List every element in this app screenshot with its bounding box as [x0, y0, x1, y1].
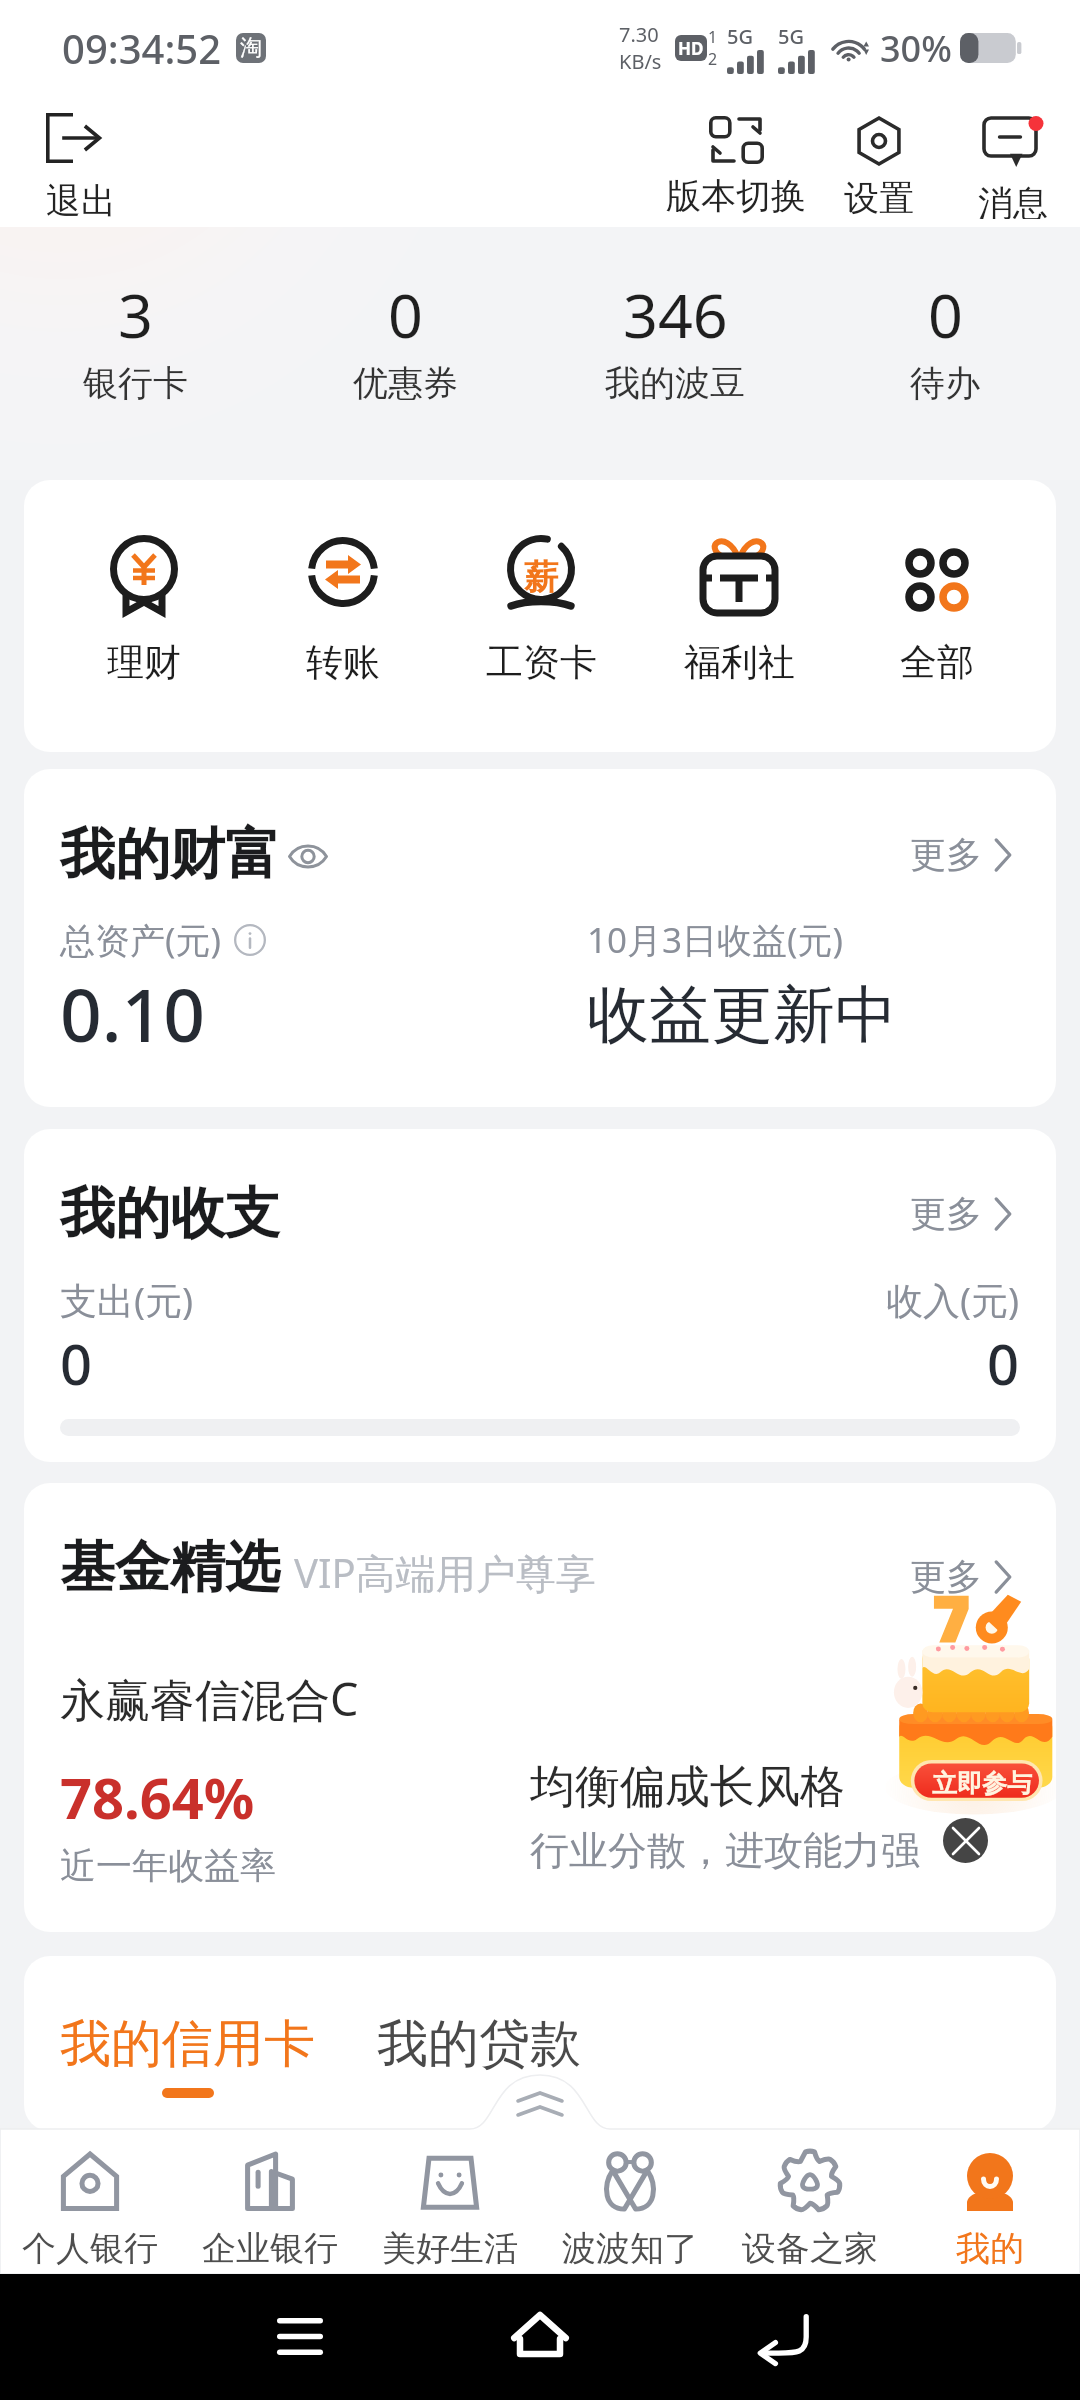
staticText: 近一年收益率	[60, 1843, 276, 1888]
staticText: 更多	[910, 1191, 982, 1236]
staticText: 收益更新中	[587, 976, 897, 1054]
button[interactable]: 设备之家	[720, 2147, 900, 2270]
staticText: 我的收支	[60, 1179, 280, 1248]
staticText: 1	[708, 26, 718, 48]
staticText: 设置	[844, 176, 914, 219]
staticText: 10月3日收益(元)	[587, 916, 844, 964]
staticText: 0	[388, 273, 423, 356]
button[interactable]: 退出	[40, 95, 122, 227]
staticText: 基金精选	[60, 1533, 280, 1602]
button[interactable]: 更多	[910, 1191, 1020, 1236]
staticText: 优惠券	[353, 361, 458, 405]
button[interactable]: 0	[810, 273, 1080, 405]
staticText: 09:34:52	[62, 21, 222, 75]
staticText: 更多	[910, 832, 982, 877]
staticText: 福利社	[684, 639, 795, 686]
staticText: 我的财富	[60, 820, 280, 889]
staticText: 收入(元)	[886, 1274, 1020, 1325]
staticText: 立即参与	[932, 1768, 1032, 1799]
staticText: 企业银行	[202, 2227, 338, 2270]
staticText: 版本切换	[666, 174, 806, 218]
staticText: 7.30	[619, 21, 659, 48]
staticText: 永赢睿信混合C	[60, 1668, 359, 1729]
button[interactable]: 346	[540, 273, 810, 405]
button[interactable]: 个人银行	[0, 2147, 180, 2270]
button[interactable]: 版本切换	[658, 108, 814, 226]
staticText: KB/s	[619, 48, 662, 75]
button[interactable]: 更多	[910, 1554, 1020, 1599]
button[interactable]: 0	[270, 273, 540, 405]
staticText: 全部	[900, 639, 974, 686]
staticText: 个人银行	[22, 2227, 158, 2270]
button[interactable]: 我的贷款	[377, 2012, 581, 2076]
button[interactable]: 消息	[970, 108, 1056, 227]
staticText: 0	[928, 273, 963, 356]
staticText: 346	[623, 273, 728, 356]
button[interactable]: 薪	[442, 535, 640, 686]
staticText: 银行卡	[83, 361, 188, 405]
staticText: 波波知了	[562, 2227, 698, 2270]
staticText: 美好生活	[382, 2227, 518, 2270]
button[interactable]: 理财	[44, 535, 243, 686]
staticText: 2	[708, 48, 718, 70]
staticText: 总资产(元)	[60, 916, 222, 964]
button[interactable]: 美好生活	[360, 2147, 540, 2270]
staticText: 5G	[778, 23, 804, 50]
staticText: 78.64%	[60, 1759, 255, 1835]
staticText: 支出(元)	[60, 1274, 194, 1325]
staticText: 5G	[727, 23, 753, 50]
staticText: 30%	[880, 24, 952, 73]
staticText: 我的	[956, 2227, 1024, 2270]
staticText: 行业分散，进攻能力强	[530, 1826, 920, 1875]
staticText: 淘	[240, 34, 262, 62]
staticText: 薪	[524, 556, 558, 599]
staticText: 设备之家	[742, 2227, 878, 2270]
staticText: 3	[118, 273, 153, 356]
button[interactable]: 设置	[836, 108, 922, 227]
staticText: 0.10	[60, 964, 206, 1063]
button[interactable]: 返回	[730, 2291, 832, 2379]
button[interactable]: 更多	[910, 832, 1020, 877]
staticText: 转账	[306, 639, 380, 686]
staticText: 理财	[107, 639, 181, 686]
staticText: 工资卡	[486, 639, 597, 686]
button[interactable]: 最近任务	[254, 2295, 346, 2378]
button[interactable]: 3	[0, 273, 270, 405]
staticText: 待办	[910, 361, 980, 405]
button[interactable]: 全部	[838, 535, 1036, 686]
button[interactable]: 我的	[900, 2147, 1080, 2270]
staticText: 我的波豆	[605, 361, 745, 405]
staticText: 更多	[910, 1554, 982, 1599]
staticText: 0	[60, 1325, 93, 1401]
button[interactable]: 福利社	[640, 535, 838, 686]
staticText: 0	[987, 1325, 1020, 1401]
button[interactable]: 关闭	[943, 1818, 988, 1863]
button[interactable]: 主页	[488, 2290, 592, 2380]
button[interactable]: 转账	[243, 535, 442, 686]
button[interactable]: 我的信用卡	[60, 2012, 315, 2098]
staticText: 退出	[46, 179, 116, 221]
staticText: 消息	[978, 181, 1048, 219]
button[interactable]: 波波知了	[540, 2147, 720, 2270]
staticText: 我的信用卡	[60, 2012, 315, 2076]
staticText: 均衡偏成长风格	[530, 1759, 845, 1816]
staticText: HD	[678, 37, 704, 60]
button[interactable]: 企业银行	[180, 2147, 360, 2270]
staticText: VIP高端用户尊享	[294, 1545, 596, 1600]
